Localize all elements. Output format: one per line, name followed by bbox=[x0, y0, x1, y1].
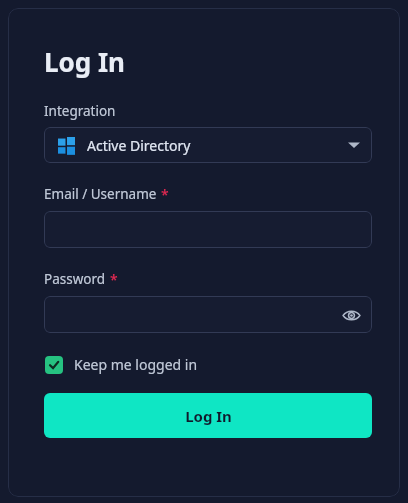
staticText: Active Directory bbox=[87, 136, 191, 155]
button[interactable]: Keep me logged in bbox=[44, 353, 199, 376]
staticText: Password bbox=[44, 270, 106, 288]
staticText: Email / Username bbox=[44, 185, 157, 203]
staticText: Log In bbox=[185, 406, 232, 426]
staticText: Integration bbox=[44, 102, 116, 120]
button[interactable]: Active Directory bbox=[44, 127, 372, 163]
button[interactable]: Show password bbox=[44, 296, 372, 333]
button[interactable]: Log In bbox=[44, 393, 372, 438]
button[interactable] bbox=[44, 211, 372, 248]
staticText: * bbox=[110, 270, 118, 289]
staticText: Log In bbox=[44, 44, 125, 79]
staticText: * bbox=[161, 185, 169, 204]
button[interactable]: Show password bbox=[338, 302, 364, 328]
staticText: Keep me logged in bbox=[74, 355, 198, 374]
